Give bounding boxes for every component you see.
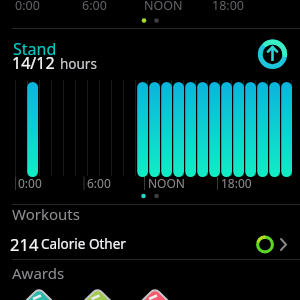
staticText: Workouts: [12, 204, 80, 224]
staticText: 6:00: [87, 175, 111, 191]
button[interactable]: [0, 282, 300, 300]
staticText: 6:00: [82, 0, 107, 14]
staticText: 0:00: [15, 0, 40, 14]
button[interactable]: 214: [0, 228, 300, 258]
staticText: 18:00: [221, 175, 252, 191]
staticText: 18:00: [212, 0, 244, 14]
staticText: Calorie Other: [41, 235, 126, 253]
staticText: NOON: [148, 175, 185, 191]
staticText: Awards: [12, 263, 65, 283]
staticText: hours: [60, 55, 97, 73]
staticText: Stand: [13, 38, 57, 60]
staticText: 0:00: [18, 175, 42, 191]
staticText: 14/12: [12, 52, 55, 74]
staticText: 214: [10, 233, 39, 255]
button[interactable]: [255, 37, 290, 72]
staticText: NOON: [144, 0, 183, 14]
